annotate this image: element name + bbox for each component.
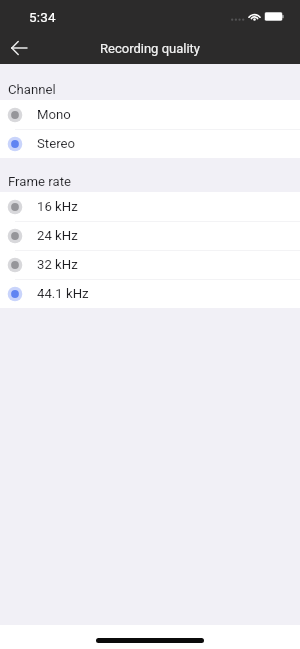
staticText: Frame rate [8,174,72,189]
button[interactable]: 32 kHz [0,250,300,279]
staticText: Channel [8,82,56,97]
staticText: Recording quality [0,41,300,56]
staticText: 5:34 [29,9,56,25]
button[interactable]: Back [6,35,32,61]
button[interactable]: 44.1 kHz [0,279,300,308]
staticText: 44.1 kHz [37,286,89,301]
button[interactable]: Stereo [0,129,300,158]
staticText: 32 kHz [37,257,78,272]
staticText: Stereo [37,136,75,151]
button[interactable]: 16 kHz [0,192,300,221]
button[interactable]: 24 kHz [0,221,300,250]
staticText: Mono [37,107,71,122]
staticText: 24 kHz [37,228,78,243]
staticText: 16 kHz [37,199,78,214]
button[interactable]: Mono [0,100,300,129]
